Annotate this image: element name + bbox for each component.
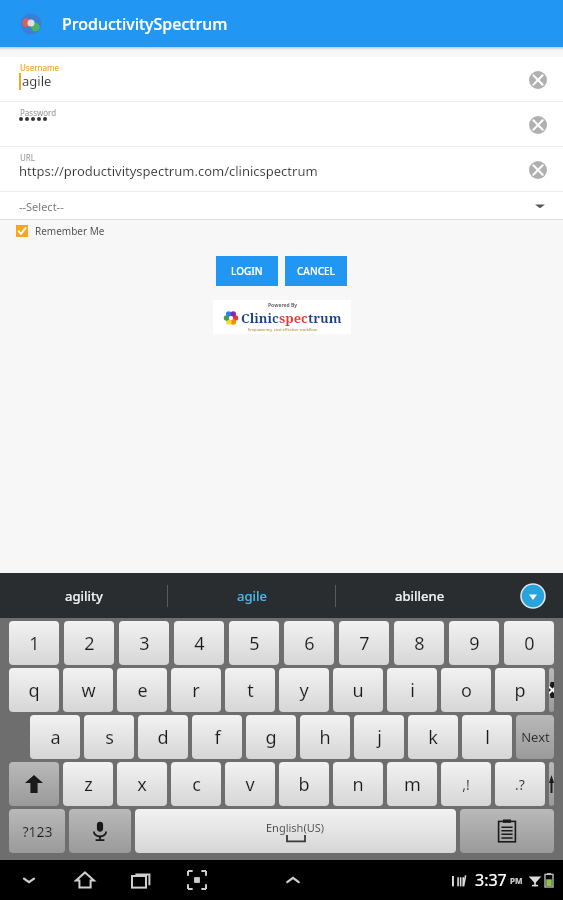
staticText: c: [192, 772, 201, 797]
button[interactable]: x: [117, 762, 167, 806]
staticText: 7: [359, 631, 370, 656]
button[interactable]: 7: [339, 621, 389, 665]
button[interactable]: Username: [0, 57, 563, 102]
button[interactable]: CANCEL: [285, 256, 347, 286]
staticText: x: [137, 772, 147, 797]
button[interactable]: 0: [504, 621, 554, 665]
staticText: o: [461, 678, 472, 703]
button[interactable]: Recents: [126, 865, 156, 895]
button[interactable]: d: [138, 715, 188, 759]
button[interactable]: u: [333, 668, 383, 712]
button[interactable]: 2: [64, 621, 114, 665]
staticText: n: [352, 772, 364, 797]
button[interactable]: More suggestions: [503, 573, 563, 618]
staticText: i: [410, 678, 415, 703]
staticText: Remember Me: [35, 224, 105, 238]
button[interactable]: Clear Username: [529, 71, 547, 89]
button[interactable]: Voice input: [69, 809, 131, 853]
staticText: 4: [194, 631, 205, 656]
button[interactable]: ,!: [441, 762, 491, 806]
staticText: ProductivitySpectrum: [62, 13, 228, 35]
button[interactable]: k: [408, 715, 458, 759]
staticText: URL: [20, 152, 36, 163]
button[interactable]: Hide keyboard: [278, 865, 308, 895]
button[interactable]: i: [387, 668, 437, 712]
button[interactable]: Backspace: [549, 668, 554, 712]
staticText: 1: [29, 631, 40, 656]
button[interactable]: Home: [70, 865, 100, 895]
staticText: agile: [237, 587, 267, 605]
button[interactable]: p: [495, 668, 545, 712]
button[interactable]: r: [171, 668, 221, 712]
button[interactable]: Clear URL: [529, 161, 547, 179]
button[interactable]: .?: [495, 762, 545, 806]
button[interactable]: e: [117, 668, 167, 712]
button[interactable]: v: [225, 762, 275, 806]
staticText: PM: [510, 875, 523, 886]
button[interactable]: f: [192, 715, 242, 759]
button[interactable]: t: [225, 668, 275, 712]
button[interactable]: l: [462, 715, 512, 759]
button[interactable]: 3: [119, 621, 169, 665]
button[interactable]: 9: [449, 621, 499, 665]
button[interactable]: w: [63, 668, 113, 712]
staticText: Username: [20, 62, 59, 73]
button[interactable]: Clear Password: [529, 116, 547, 134]
button[interactable]: 1: [9, 621, 59, 665]
button[interactable]: 6: [284, 621, 334, 665]
staticText: q: [28, 678, 40, 703]
staticText: d: [157, 725, 169, 750]
button[interactable]: URL: [0, 147, 563, 192]
button[interactable]: s: [84, 715, 134, 759]
staticText: g: [265, 725, 277, 750]
staticText: CANCEL: [297, 264, 335, 278]
button[interactable]: m: [387, 762, 437, 806]
button[interactable]: Space: [135, 809, 456, 853]
staticText: a: [50, 725, 61, 750]
button[interactable]: Remember Me: [16, 220, 563, 242]
button[interactable]: Next: [516, 715, 554, 759]
staticText: h: [319, 725, 331, 750]
staticText: r: [192, 678, 200, 703]
button[interactable]: Back: [14, 865, 44, 895]
button[interactable]: Powered By: [213, 300, 351, 334]
button[interactable]: Shift: [549, 762, 554, 806]
staticText: 8: [414, 631, 425, 656]
staticText: f: [214, 725, 221, 750]
button[interactable]: Clipboard: [460, 809, 554, 853]
button[interactable]: agile: [168, 573, 335, 618]
button[interactable]: ?123: [9, 809, 65, 853]
button[interactable]: y: [279, 668, 329, 712]
staticText: 5: [249, 631, 260, 656]
button[interactable]: Password: [0, 102, 563, 147]
button[interactable]: --Select--: [0, 192, 563, 220]
button[interactable]: 4: [174, 621, 224, 665]
button[interactable]: abillene: [336, 573, 503, 618]
staticText: 6: [304, 631, 315, 656]
staticText: English(US): [266, 820, 325, 835]
button[interactable]: b: [279, 762, 329, 806]
staticText: .?: [515, 775, 525, 794]
staticText: y: [299, 678, 309, 703]
staticText: --Select--: [19, 199, 64, 214]
button[interactable]: Shift: [9, 762, 59, 806]
button[interactable]: z: [63, 762, 113, 806]
staticText: e: [137, 678, 148, 703]
button[interactable]: q: [9, 668, 59, 712]
button[interactable]: n: [333, 762, 383, 806]
staticText: ?123: [22, 822, 53, 841]
button[interactable]: Screenshot: [182, 865, 212, 895]
button[interactable]: a: [30, 715, 80, 759]
button[interactable]: LOGIN: [216, 256, 278, 286]
staticText: s: [105, 725, 114, 750]
button[interactable]: 8: [394, 621, 444, 665]
button[interactable]: o: [441, 668, 491, 712]
button[interactable]: c: [171, 762, 221, 806]
button[interactable]: h: [300, 715, 350, 759]
button[interactable]: 5: [229, 621, 279, 665]
button[interactable]: g: [246, 715, 296, 759]
staticText: Password: [20, 107, 57, 118]
staticText: abillene: [395, 587, 445, 605]
button[interactable]: j: [354, 715, 404, 759]
button[interactable]: agility: [0, 573, 167, 618]
